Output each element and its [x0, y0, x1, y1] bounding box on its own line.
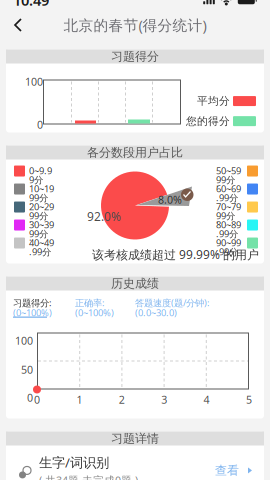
staticText: 0: [37, 117, 43, 132]
staticText: .99分: [216, 245, 238, 258]
staticText: 0: [27, 390, 33, 405]
staticText: 99分: [216, 173, 235, 186]
staticText: 80~89: [216, 218, 241, 231]
staticText: 习题详情: [111, 431, 159, 446]
staticText: 100: [25, 74, 43, 89]
staticText: 历史成绩: [111, 276, 159, 291]
staticText: 9分: [29, 173, 43, 186]
staticText: 查看: [215, 463, 239, 478]
staticText: 20~29.: [29, 200, 54, 225]
staticText: 习题得分: [111, 49, 159, 64]
staticText: 10~19.: [29, 182, 54, 207]
staticText: 正确率:: [75, 296, 105, 309]
staticText: 答题速度(题/分钟):: [135, 296, 210, 309]
staticText: .99分: [216, 227, 238, 240]
staticText: 0~9.9: [29, 164, 52, 177]
staticText: 1: [76, 392, 82, 407]
staticText: 您的得分: [186, 115, 230, 128]
staticText: 99分: [29, 227, 48, 240]
staticText: 生字/词识别: [39, 453, 109, 471]
staticText: 5: [246, 392, 252, 407]
button[interactable]: Back: [0, 11, 36, 38]
staticText: 习题得分:: [13, 296, 52, 309]
staticText: 100: [15, 333, 33, 348]
staticText: 50: [21, 362, 33, 377]
button[interactable]: 正确率:: [75, 296, 114, 316]
staticText: (0.0~30.0): [135, 306, 177, 319]
staticText: 30~39.: [29, 218, 54, 243]
staticText: 8.0%: [158, 192, 182, 207]
staticText: 99分: [29, 191, 48, 204]
staticText: 99分: [216, 209, 235, 222]
staticText: ( 共34题,未完成0题 ): [39, 473, 138, 480]
staticText: 平均分: [197, 94, 230, 108]
staticText: 50~59.: [216, 164, 241, 189]
staticText: 99分: [29, 209, 48, 222]
staticText: 70~79.: [216, 200, 241, 225]
button[interactable]: 答题速度(题/分钟):: [135, 296, 210, 316]
staticText: 60~69: [216, 182, 241, 195]
staticText: 3: [161, 392, 167, 407]
button[interactable]: 习题得分:: [13, 296, 52, 318]
staticText: 92.0%: [87, 208, 121, 224]
staticText: 2: [119, 392, 125, 407]
staticText: .99分: [216, 191, 238, 204]
staticText: .99分: [29, 245, 51, 258]
staticText: 90~99: [216, 236, 241, 249]
staticText: 0: [34, 392, 40, 407]
staticText: (0~100%): [13, 306, 52, 319]
staticText: 各分数段用户占比: [87, 145, 183, 160]
staticText: 10:49: [13, 0, 49, 10]
button[interactable]: 生字/词识别: [6, 445, 264, 480]
staticText: 该考核成绩超过 99.99% 的用户: [92, 246, 259, 262]
staticText: (0~100%): [75, 306, 114, 319]
staticText: 北京的春节(得分统计): [63, 15, 206, 35]
staticText: 40~49: [29, 236, 54, 249]
staticText: 4: [204, 392, 210, 407]
